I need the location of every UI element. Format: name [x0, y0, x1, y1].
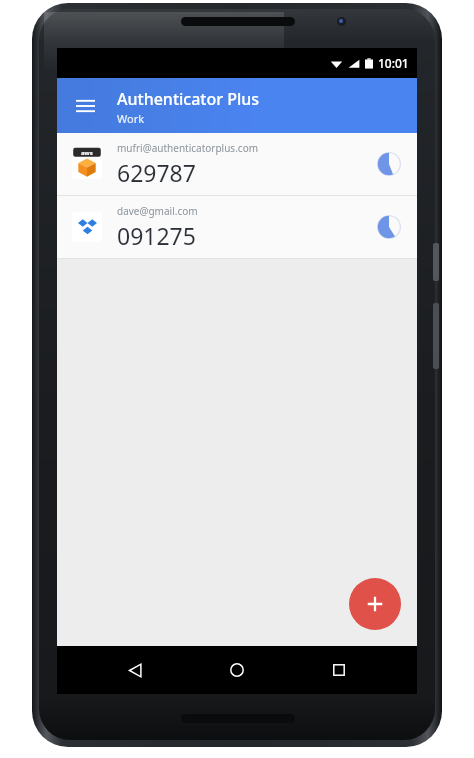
button[interactable]: Open navigation drawer: [65, 86, 105, 126]
button[interactable]: Back: [111, 646, 159, 694]
staticText: aws: [81, 149, 93, 157]
staticText: 629787: [117, 157, 196, 188]
staticText: Authenticator Plus: [117, 88, 260, 110]
staticText: Work: [117, 111, 145, 126]
staticText: 10:01: [378, 55, 409, 71]
button[interactable]: aws: [57, 133, 417, 195]
staticText: 091275: [117, 220, 196, 251]
button[interactable]: dave@gmail.com: [57, 196, 417, 258]
button[interactable]: Add account: [349, 578, 401, 630]
staticText: dave@gmail.com: [117, 204, 198, 218]
button[interactable]: Recent apps: [315, 646, 363, 694]
staticText: mufri@authenticatorplus.com: [117, 141, 259, 155]
button[interactable]: Home: [213, 646, 261, 694]
button[interactable]: Time remaining: [375, 213, 403, 241]
button[interactable]: Time remaining: [375, 150, 403, 178]
